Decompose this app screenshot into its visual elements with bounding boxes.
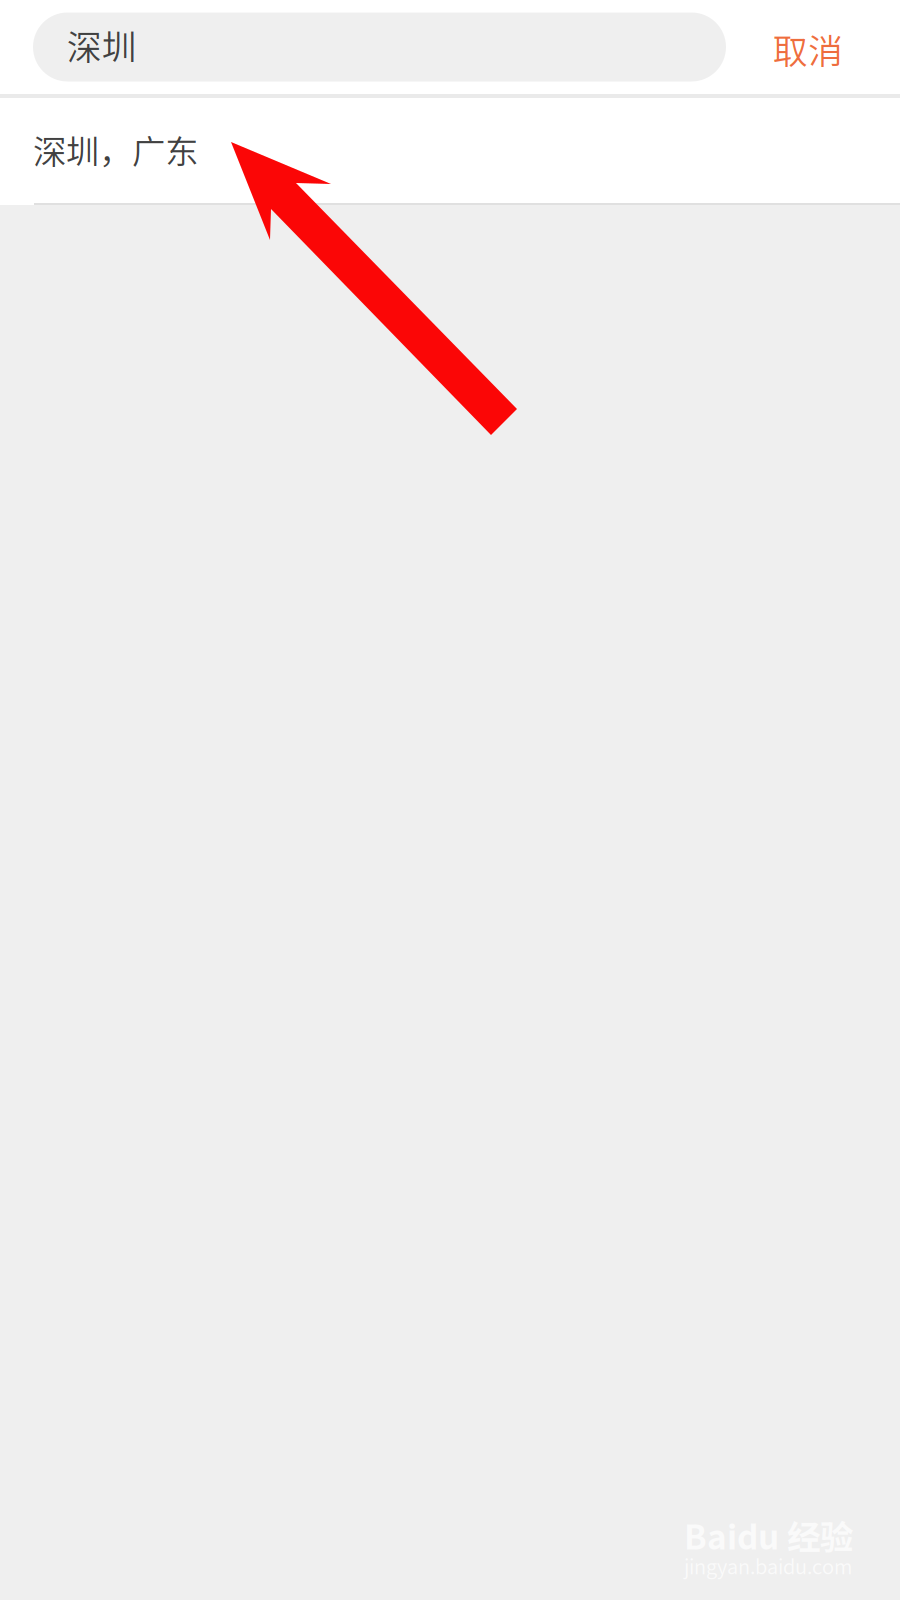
button[interactable]: 深圳，广东 [0, 98, 900, 205]
button[interactable]: 取消 [726, 12, 890, 81]
button[interactable]: 深圳 [33, 12, 726, 81]
staticText: 深圳，广东 [33, 125, 198, 174]
staticText: 深圳 [67, 20, 137, 70]
staticText: 取消 [773, 24, 843, 74]
staticText: jingyan.baidu.com [684, 1551, 852, 1580]
staticText: Baidu 经验 [684, 1511, 853, 1559]
